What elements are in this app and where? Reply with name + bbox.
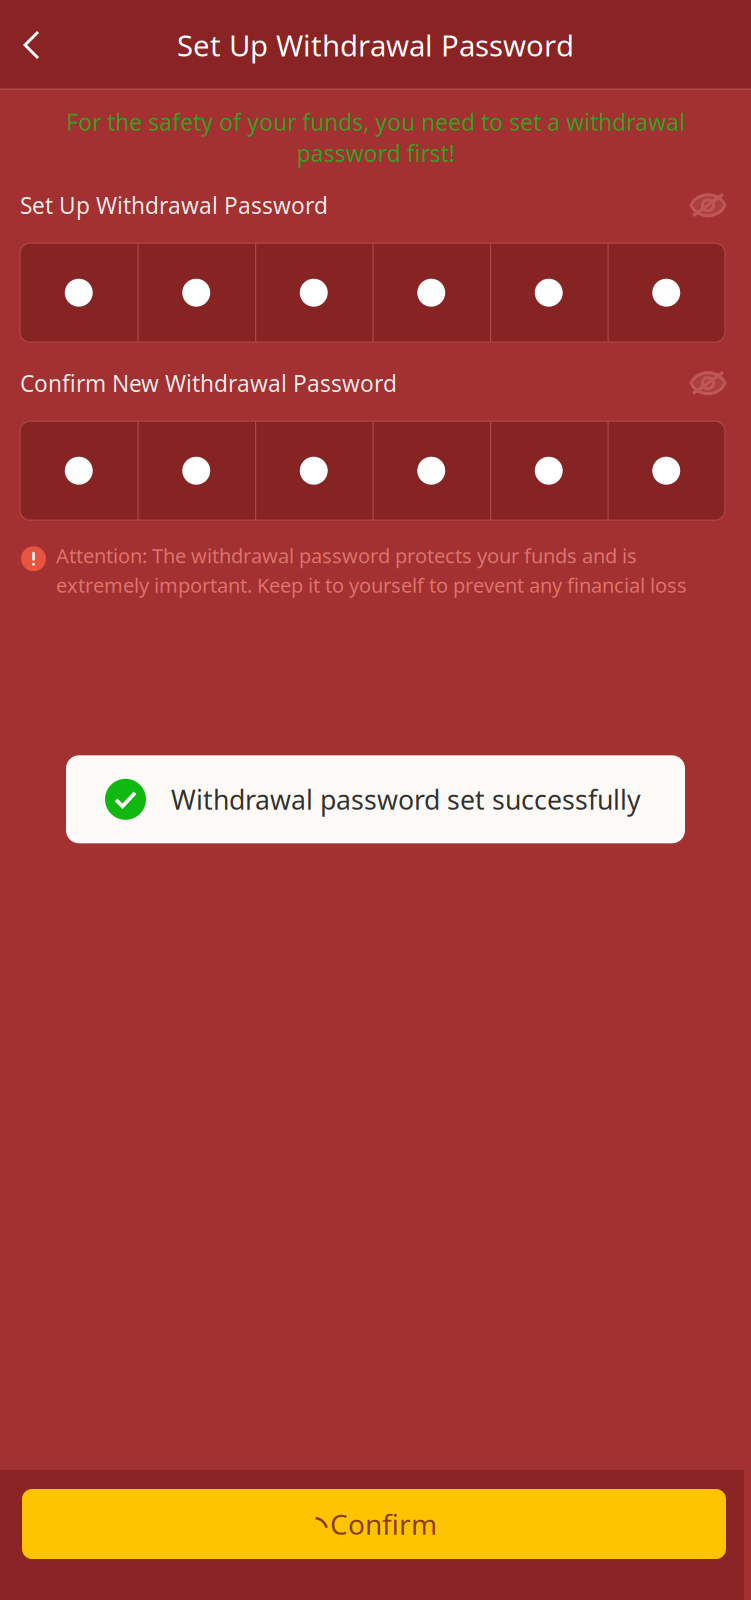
staticText: Confirm — [330, 1505, 437, 1543]
staticText: Set Up Withdrawal Password — [177, 25, 574, 64]
staticText: Withdrawal password set successfully — [171, 782, 641, 817]
button[interactable]: Confirm — [22, 1489, 726, 1559]
staticText: Attention: The withdrawal password prote… — [56, 542, 687, 598]
button[interactable]: Back — [0, 14, 58, 76]
staticText: For the safety of your funds, you need t… — [66, 107, 685, 168]
button[interactable]: Show confirm password — [685, 364, 731, 402]
staticText: Confirm New Withdrawal Password — [20, 368, 397, 398]
button[interactable]: Show password — [685, 186, 731, 224]
staticText: Set Up Withdrawal Password — [20, 190, 328, 220]
